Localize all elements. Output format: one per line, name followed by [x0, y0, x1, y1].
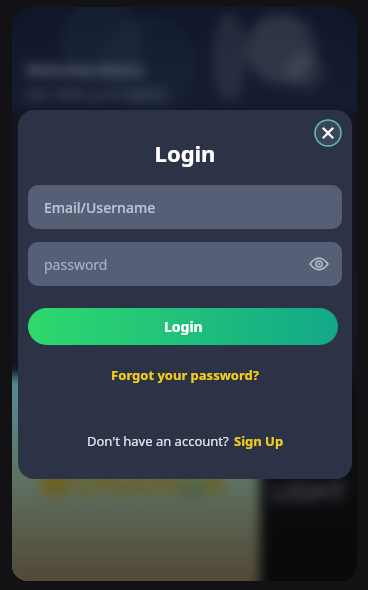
staticText: Forgot your password?: [111, 366, 259, 384]
staticText: Login: [164, 317, 203, 336]
button[interactable]: Forgot your password?: [18, 363, 352, 387]
staticText: Welcome bonus: [26, 59, 145, 79]
staticText: Email/Username: [44, 198, 156, 217]
staticText: Get 100% up to 500€/$: [26, 85, 165, 103]
button[interactable]: Login: [28, 308, 338, 345]
button[interactable]: Close: [314, 119, 342, 147]
staticText: Sign Up: [234, 432, 284, 450]
staticText: Don't have an account?: [87, 432, 229, 450]
staticText: BONANZA: [48, 458, 225, 504]
staticText: password: [44, 255, 108, 274]
button[interactable]: password: [28, 242, 342, 286]
button[interactable]: Sign Up: [234, 432, 284, 450]
staticText: LIGHT: [271, 473, 347, 508]
button[interactable]: Show password: [304, 249, 334, 279]
staticText: SWEET: [70, 404, 203, 458]
button[interactable]: Email/Username: [28, 185, 342, 229]
staticText: Login: [18, 138, 352, 168]
